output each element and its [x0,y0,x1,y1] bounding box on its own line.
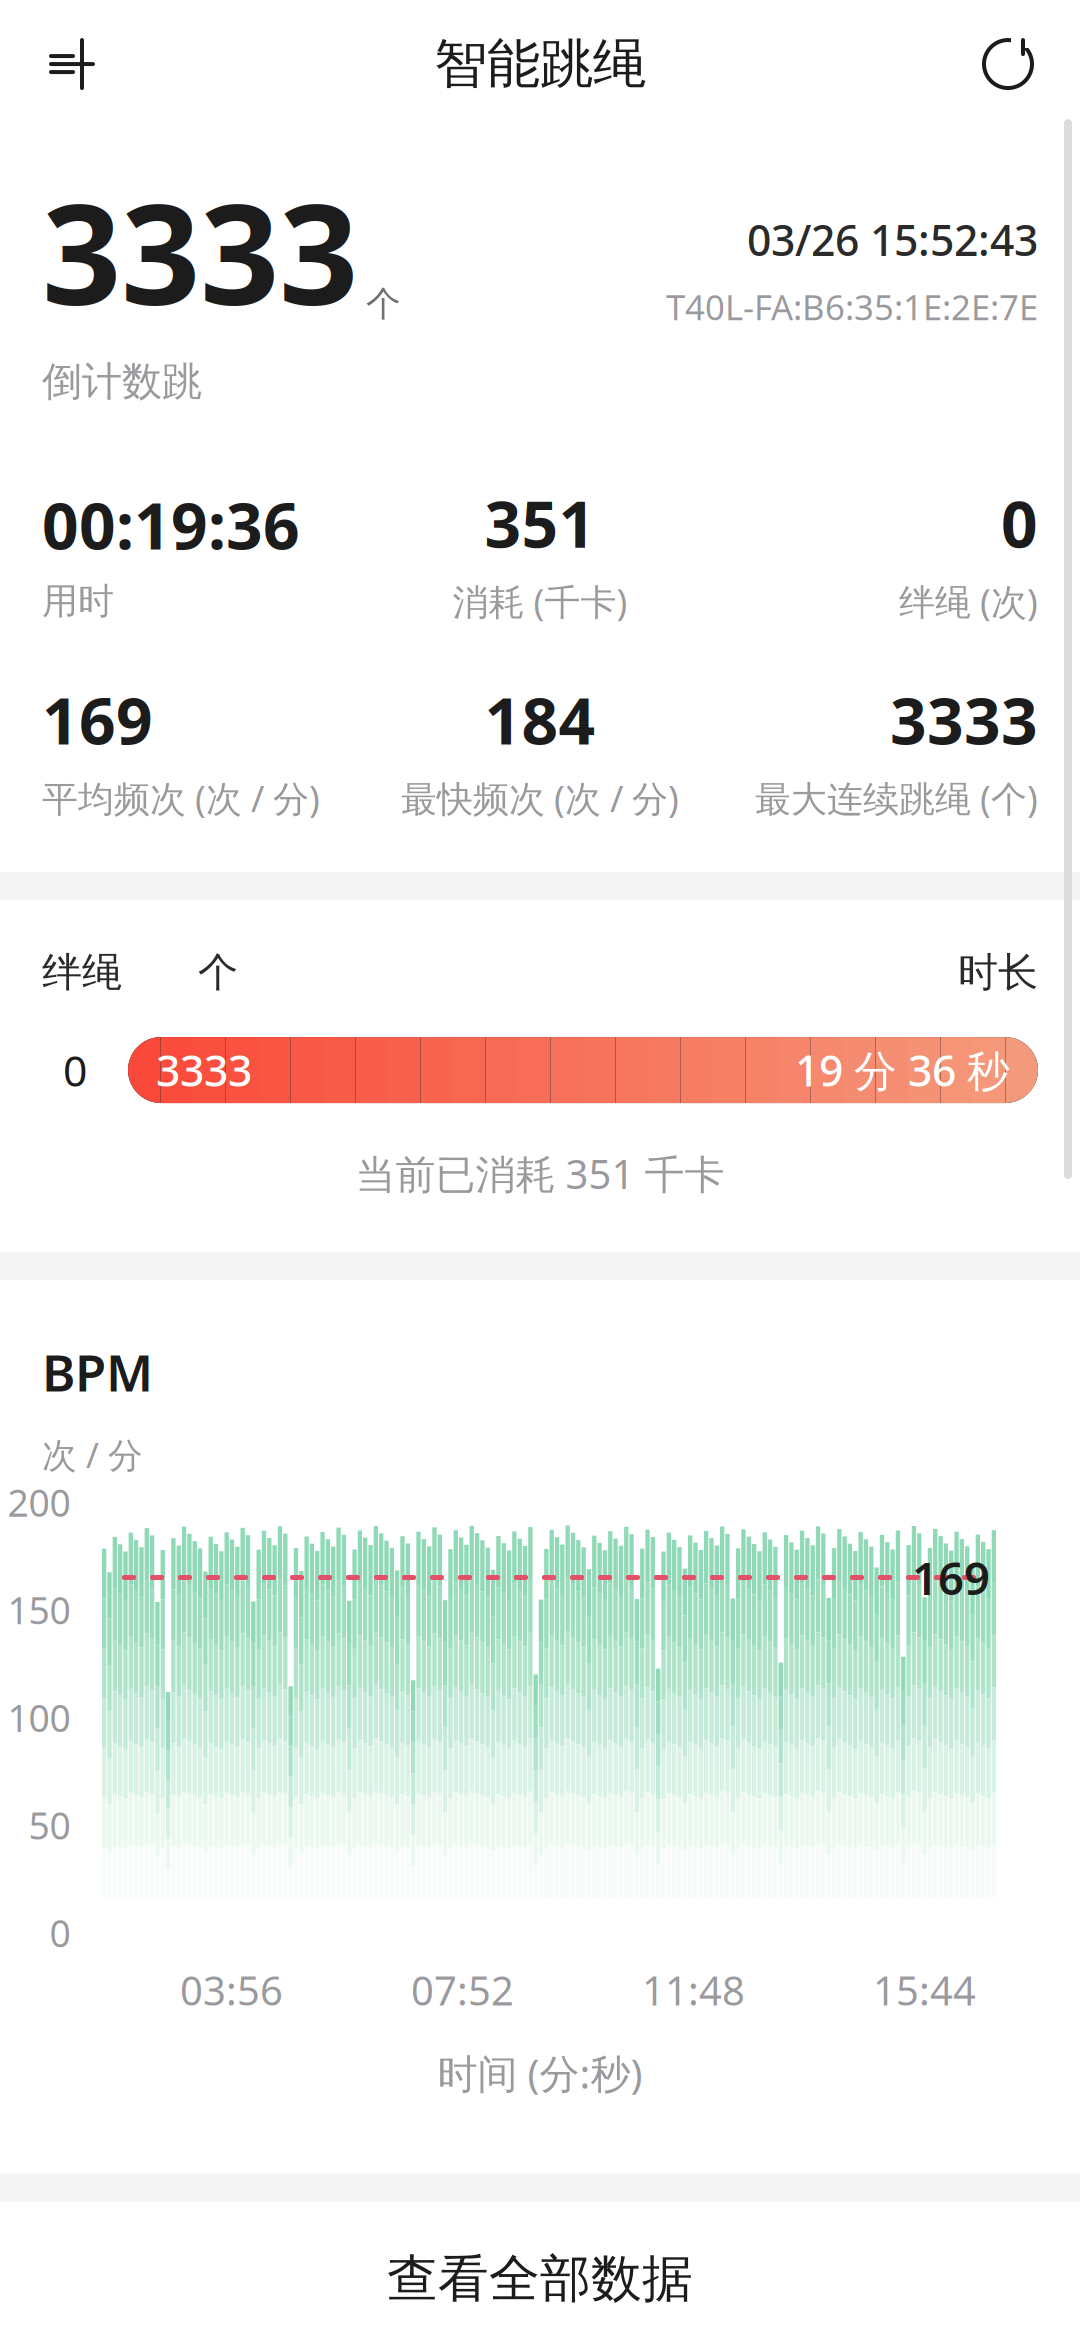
staticText: 倒计数跳 [42,357,202,406]
staticText: 用时 [42,579,114,623]
staticText: 个 [198,948,238,997]
staticText: 3333 [890,677,1038,762]
staticText: 19 分 36 秒 [795,1042,1010,1098]
button[interactable]: 查看全部数据 [0,2202,1080,2337]
button[interactable]: 返回 [30,22,114,106]
staticText: 0 [63,1042,87,1098]
staticText: 169 [42,677,153,762]
staticText: 平均频次 (次 / 分) [42,774,320,822]
staticText: 169 [912,1547,990,1608]
staticText: 184 [484,677,595,762]
staticText: 时间 (分:秒) [437,2047,642,2100]
staticText: 15:44 [873,1963,976,2017]
staticText: 03/26 15:52:43 [747,211,1038,268]
staticText: 绊绳 [42,948,122,997]
staticText: 351 [484,480,595,565]
staticText: 3333 [42,159,358,343]
staticText: 03:56 [180,1963,283,2017]
staticText: 查看全部数据 [387,2248,693,2310]
staticText: T40L-FA:B6:35:1E:2E:7E [666,284,1038,330]
staticText: 次 / 分 [42,1431,143,1477]
staticText: 3333 [156,1042,252,1098]
staticText: 200 [7,1477,70,1527]
staticText: 07:52 [411,1963,514,2017]
staticText: BPM [42,1338,153,1405]
staticText: 150 [7,1585,70,1635]
staticText: 0 [49,1908,70,1957]
staticText: 00:19:36 [42,482,300,567]
staticText: 消耗 (千卡) [452,577,627,625]
staticText: 智能跳绳 [434,31,646,97]
staticText: 0 [1001,480,1038,565]
staticText: 11:48 [642,1963,745,2017]
staticText: 50 [28,1800,70,1850]
staticText: 时长 [958,948,1038,997]
staticText: 100 [7,1693,70,1742]
staticText: 个 [366,283,401,325]
staticText: 最大连续跳绳 (个) [755,774,1038,822]
button[interactable]: 刷新 [966,22,1050,106]
staticText: 绊绳 (次) [899,577,1038,625]
staticText: 最快频次 (次 / 分) [401,774,679,822]
staticText: 当前已消耗 351 千卡 [355,1147,724,1200]
